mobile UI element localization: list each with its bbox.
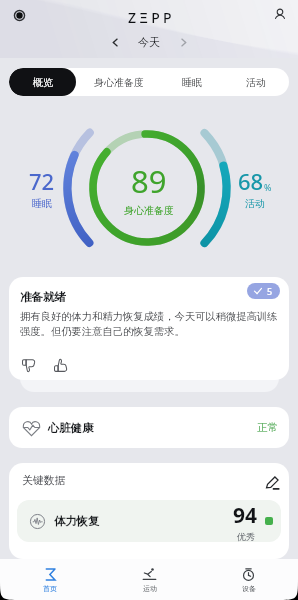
- staticText: 心脏健康: [48, 421, 94, 435]
- staticText: 72: [29, 166, 55, 196]
- button[interactable]: 概览: [9, 68, 76, 96]
- staticText: 正常: [257, 421, 278, 434]
- staticText: 5: [267, 285, 273, 297]
- staticText: 身心准备度: [94, 76, 144, 89]
- button[interactable]: 今天: [138, 35, 160, 49]
- staticText: 睡眠: [32, 197, 52, 210]
- staticText: 94: [233, 501, 258, 530]
- staticText: 体力恢复: [54, 514, 100, 528]
- staticText: 睡眠: [182, 76, 202, 89]
- button[interactable]: 心脏健康: [9, 407, 289, 448]
- staticText: 运动: [143, 584, 157, 593]
- button[interactable]: 设备: [199, 559, 298, 600]
- button[interactable]: Previous day: [106, 33, 124, 51]
- staticText: ZΞPP: [128, 8, 175, 27]
- staticText: 概览: [33, 76, 53, 89]
- staticText: %: [264, 181, 272, 193]
- staticText: 89: [131, 160, 167, 202]
- staticText: 68: [238, 166, 264, 196]
- button[interactable]: Devices: [9, 5, 29, 25]
- button[interactable]: 体力恢复: [17, 500, 281, 542]
- button[interactable]: Next day: [174, 33, 192, 51]
- button[interactable]: 睡眠: [162, 68, 222, 96]
- staticText: 拥有良好的体力和精力恢复成绩，今天可以稍微提高训练强度。但仍要注意自己的恢复需求…: [20, 310, 279, 338]
- button[interactable]: 5: [247, 283, 280, 299]
- staticText: 活动: [245, 197, 265, 210]
- button[interactable]: Like: [51, 356, 69, 374]
- staticText: 身心准备度: [124, 204, 174, 217]
- button[interactable]: 身心准备度: [76, 68, 162, 96]
- button[interactable]: 关键数据: [22, 474, 66, 488]
- staticText: 优秀: [237, 531, 255, 542]
- button[interactable]: Dislike: [19, 356, 37, 374]
- button[interactable]: Edit: [260, 470, 284, 494]
- button[interactable]: 首页: [0, 559, 100, 600]
- button[interactable]: 准备就绪: [9, 277, 289, 380]
- staticText: 准备就绪: [20, 290, 66, 304]
- button[interactable]: 活动: [222, 68, 289, 96]
- button[interactable]: Profile: [270, 5, 290, 25]
- button[interactable]: 运动: [100, 559, 199, 600]
- staticText: 设备: [242, 584, 256, 593]
- staticText: 首页: [43, 584, 57, 593]
- staticText: 活动: [246, 76, 266, 89]
